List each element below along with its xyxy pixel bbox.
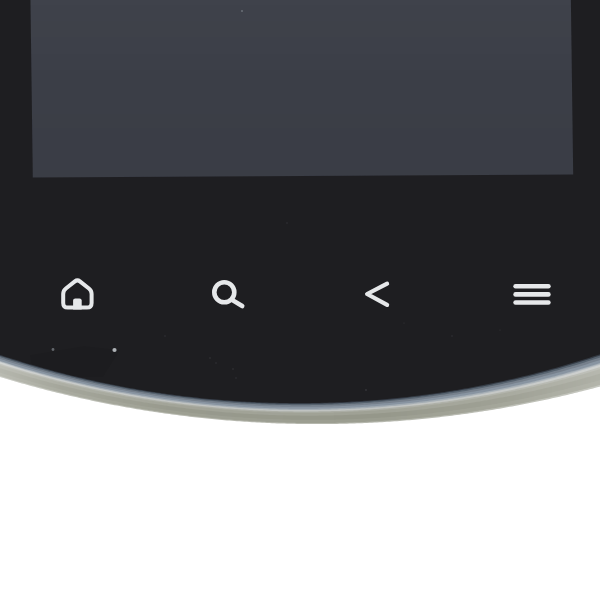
button[interactable]: Menu <box>496 266 568 321</box>
button[interactable]: Back <box>348 265 406 323</box>
button[interactable]: Search <box>194 262 262 325</box>
button[interactable]: Home <box>43 259 112 328</box>
